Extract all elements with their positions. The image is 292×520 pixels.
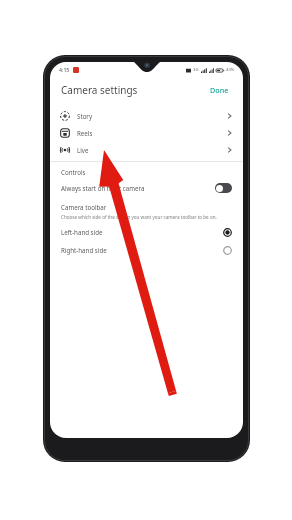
button[interactable]: Live: [50, 141, 243, 158]
staticText: 3G: [193, 67, 199, 73]
staticText: Camera settings: [61, 83, 138, 97]
staticText: Left-hand side: [61, 228, 103, 236]
button[interactable]: Story: [50, 107, 243, 124]
staticText: Story: [77, 112, 93, 120]
staticText: Controls: [61, 168, 86, 176]
staticText: Choose which side of the screen you want…: [61, 214, 217, 220]
staticText: Live: [77, 146, 89, 154]
button[interactable]: Always start on front camera: [50, 179, 243, 197]
button[interactable]: Reels: [50, 124, 243, 141]
staticText: Camera toolbar: [61, 203, 107, 211]
button[interactable]: Done: [207, 83, 232, 97]
button[interactable]: Right-hand side: [50, 241, 243, 259]
staticText: Always start on front camera: [61, 184, 145, 192]
staticText: Reels: [77, 129, 93, 137]
staticText: 4:15: [59, 66, 70, 73]
button[interactable]: Left-hand side: [50, 223, 243, 241]
staticText: Right-hand side: [61, 246, 107, 254]
staticText: Done: [210, 85, 229, 95]
staticText: 43%: [226, 67, 235, 73]
